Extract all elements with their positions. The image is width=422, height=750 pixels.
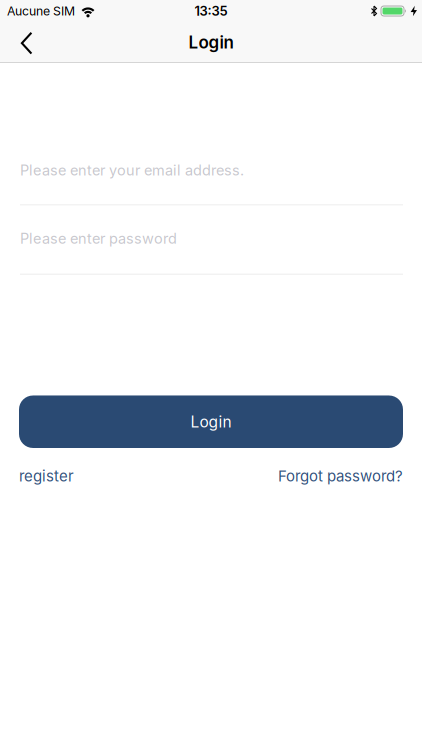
button[interactable]: register xyxy=(19,467,74,485)
staticText: Login xyxy=(190,412,231,431)
staticText: Aucune SIM xyxy=(7,4,75,18)
staticText: Please enter password xyxy=(20,230,177,247)
staticText: Forgot password? xyxy=(278,467,403,485)
button[interactable]: Forgot password? xyxy=(278,467,403,485)
staticText: 13:35 xyxy=(194,3,227,19)
staticText: Login xyxy=(188,32,233,53)
button[interactable] xyxy=(0,25,32,60)
staticText: register xyxy=(19,467,74,485)
button[interactable]: Login xyxy=(19,395,403,448)
staticText: Please enter your email address. xyxy=(20,161,244,179)
